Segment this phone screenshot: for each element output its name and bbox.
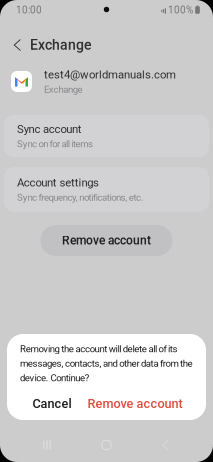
staticText: Exchange [44, 84, 83, 95]
button[interactable]: Remove account [40, 225, 172, 256]
staticText: test4@worldmanuals.com [44, 68, 176, 81]
staticText: 100% [168, 4, 193, 16]
button[interactable]: Remove account [83, 392, 187, 416]
staticText: Sync account [17, 122, 82, 136]
staticText: Account settings [17, 176, 99, 189]
staticText: Remove account [87, 396, 182, 411]
button[interactable]: Account settings [4, 167, 209, 212]
staticText: Removing the account will delete all of … [20, 343, 193, 384]
staticText: Sync frequency, notifications, etc. [17, 192, 144, 203]
button[interactable]: Back [6, 30, 30, 60]
staticText: Remove account [62, 233, 151, 248]
staticText: Sync on for all items [17, 138, 93, 150]
button[interactable]: Sync account [4, 115, 209, 157]
button[interactable]: Recent apps [27, 437, 67, 453]
staticText: 10:00 [16, 4, 42, 16]
staticText: Cancel [32, 396, 71, 411]
button[interactable]: Cancel [21, 392, 83, 416]
button[interactable]: Home [86, 437, 126, 453]
staticText: Exchange [30, 37, 91, 53]
